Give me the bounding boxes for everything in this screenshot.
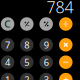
button[interactable]: Divide — [59, 17, 72, 31]
staticText: 8 — [24, 39, 29, 51]
button[interactable]: Percent — [39, 17, 53, 31]
staticText: 2 — [24, 73, 29, 80]
button[interactable]: 8 — [20, 38, 34, 51]
button[interactable]: 1 — [1, 73, 14, 80]
staticText: 4 — [5, 56, 10, 68]
staticText: 5 — [24, 56, 29, 68]
button[interactable]: Plus — [59, 73, 72, 80]
button[interactable]: 3 — [39, 73, 53, 80]
button[interactable]: 7 — [1, 38, 14, 51]
button[interactable]: Plus or minus — [20, 17, 34, 31]
staticText: 6 — [44, 56, 49, 68]
staticText: 1 — [5, 73, 10, 80]
button[interactable]: 2 — [20, 73, 34, 80]
button[interactable]: Minus — [59, 55, 72, 69]
button[interactable]: 9 — [39, 38, 53, 51]
button[interactable]: Multiply — [59, 38, 72, 51]
staticText: 784 — [46, 0, 73, 18]
button[interactable]: 5 — [20, 55, 34, 69]
staticText: 9 — [44, 39, 49, 51]
staticText: 7 — [5, 39, 10, 51]
button[interactable]: C — [1, 17, 14, 31]
button[interactable]: 4 — [1, 55, 14, 69]
button[interactable]: 6 — [39, 55, 53, 69]
staticText: C — [5, 18, 11, 30]
staticText: 3 — [44, 73, 49, 80]
